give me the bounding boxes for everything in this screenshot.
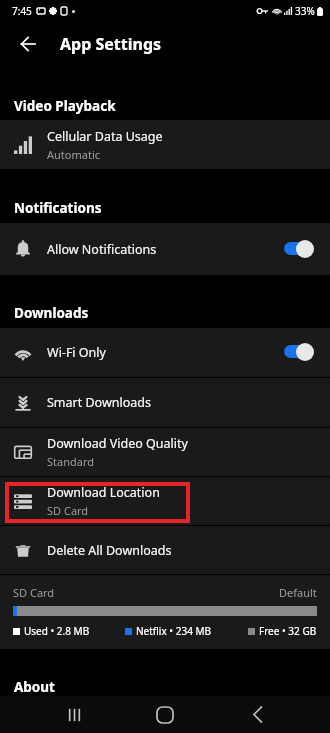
staticText: App Settings <box>60 33 162 55</box>
staticText: Default <box>279 585 317 600</box>
staticText: Used • 2.8 MB <box>24 624 90 638</box>
staticText: Netflix • 234 MB <box>136 624 212 638</box>
staticText: Video Playback <box>14 97 116 115</box>
staticText: Wi-Fi Only <box>47 344 106 361</box>
button[interactable]: Smart Downloads <box>0 378 330 427</box>
staticText: 7:45 <box>12 4 32 18</box>
staticText: Download Location <box>47 484 160 501</box>
button[interactable]: Home <box>119 696 211 733</box>
staticText: SD Card <box>47 503 89 518</box>
staticText: 33% <box>295 4 315 18</box>
staticText: Notifications <box>14 199 102 217</box>
button[interactable]: Download Location <box>0 477 330 525</box>
staticText: Automatic <box>47 147 100 162</box>
staticText: Standard <box>47 454 95 469</box>
button[interactable]: Download Video Quality <box>0 428 330 476</box>
button[interactable]: Cellular Data Usage <box>0 120 330 169</box>
staticText: Smart Downloads <box>47 394 151 411</box>
staticText: About <box>14 678 55 696</box>
staticText: Downloads <box>14 304 89 322</box>
button[interactable]: Delete All Downloads <box>0 526 330 574</box>
staticText: SD Card <box>13 585 55 600</box>
button[interactable]: Allow Notifications <box>0 223 330 275</box>
button[interactable]: Back <box>212 696 304 733</box>
staticText: Cellular Data Usage <box>47 128 163 145</box>
button[interactable]: Wi-Fi Only <box>0 328 330 377</box>
staticText: Delete All Downloads <box>47 542 172 559</box>
staticText: Download Video Quality <box>47 435 188 452</box>
button[interactable]: Back <box>0 22 56 66</box>
staticText: Free • 32 GB <box>259 624 317 638</box>
staticText: Allow Notifications <box>47 241 157 258</box>
button[interactable]: Recent apps <box>28 696 120 733</box>
